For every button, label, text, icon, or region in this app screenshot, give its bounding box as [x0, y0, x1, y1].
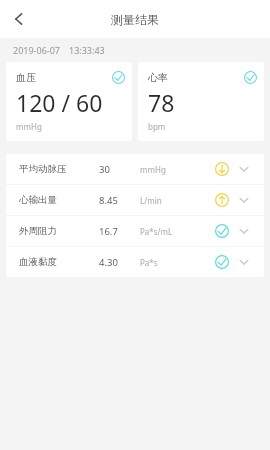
staticText: mmHg — [140, 164, 215, 175]
button[interactable]: Expand 心输出量 — [236, 192, 252, 208]
staticText: 8.45 — [99, 194, 140, 207]
button[interactable]: 血液黏度 — [6, 247, 264, 277]
staticText: 血压 — [16, 71, 36, 84]
staticText: 外周阻力 — [19, 225, 99, 237]
staticText: mmHg — [16, 121, 42, 132]
button[interactable]: Expand 平均动脉压 — [236, 161, 252, 177]
button[interactable]: Expand 血液黏度 — [236, 254, 252, 270]
staticText: Pa*s/mL — [140, 226, 215, 237]
button[interactable]: 心率 — [138, 62, 264, 141]
button[interactable]: Expand 外周阻力 — [236, 223, 252, 239]
staticText: 16.7 — [99, 225, 140, 238]
staticText: 13:33:43 — [69, 44, 105, 56]
button[interactable]: 血压 — [6, 62, 132, 141]
staticText: Pa*s — [140, 257, 215, 268]
button[interactable]: 外周阻力 — [6, 216, 264, 246]
staticText: 心输出量 — [19, 194, 99, 206]
staticText: 78 — [148, 87, 175, 118]
button[interactable]: 心输出量 — [6, 185, 264, 215]
staticText: 测量结果 — [111, 12, 159, 27]
staticText: bpm — [148, 121, 166, 132]
button[interactable]: 平均动脉压 — [6, 154, 264, 184]
staticText: 120 / 60 — [16, 87, 103, 118]
staticText: 平均动脉压 — [19, 163, 99, 175]
staticText: 心率 — [148, 71, 168, 84]
staticText: L/min — [140, 195, 215, 206]
staticText: 4.30 — [99, 256, 140, 269]
staticText: 30 — [99, 163, 140, 176]
staticText: 2019-06-07 — [13, 44, 60, 56]
button[interactable]: Back — [6, 6, 32, 32]
staticText: 血液黏度 — [19, 256, 99, 268]
